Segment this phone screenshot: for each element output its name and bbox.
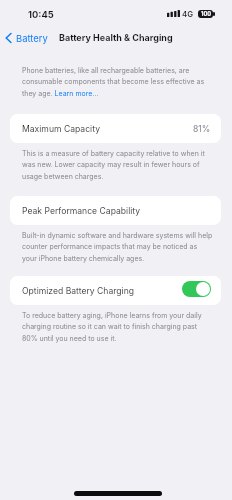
- button[interactable]: Optimized Battery Charging: [10, 276, 221, 305]
- staticText: Battery: [16, 33, 48, 44]
- button[interactable]: Maximum Capacity: [10, 114, 221, 143]
- staticText: 100: [201, 11, 211, 18]
- staticText: This is a measure of battery capacity re…: [22, 149, 213, 181]
- button[interactable]: Peak Performance Capability: [10, 196, 221, 225]
- button[interactable]: Learn more: [52, 88, 97, 98]
- staticText: 10:45: [28, 9, 54, 20]
- staticText: Phone batteries, like all rechargeable b…: [22, 66, 213, 98]
- staticText: Built-in dynamic software and hardware s…: [22, 231, 213, 263]
- staticText: 4G: [182, 9, 194, 18]
- staticText: To reduce battery aging, iPhone learns f…: [22, 311, 213, 343]
- staticText: Optimized Battery Charging: [22, 286, 135, 296]
- staticText: Peak Performance Capability: [22, 206, 141, 216]
- button[interactable]: Battery: [4, 31, 49, 45]
- staticText: Battery Health & Charging: [59, 32, 173, 43]
- button[interactable]: Optimized Battery Charging: [182, 281, 211, 297]
- staticText: Maximum Capacity: [22, 124, 100, 134]
- staticText: 81%: [193, 124, 211, 134]
